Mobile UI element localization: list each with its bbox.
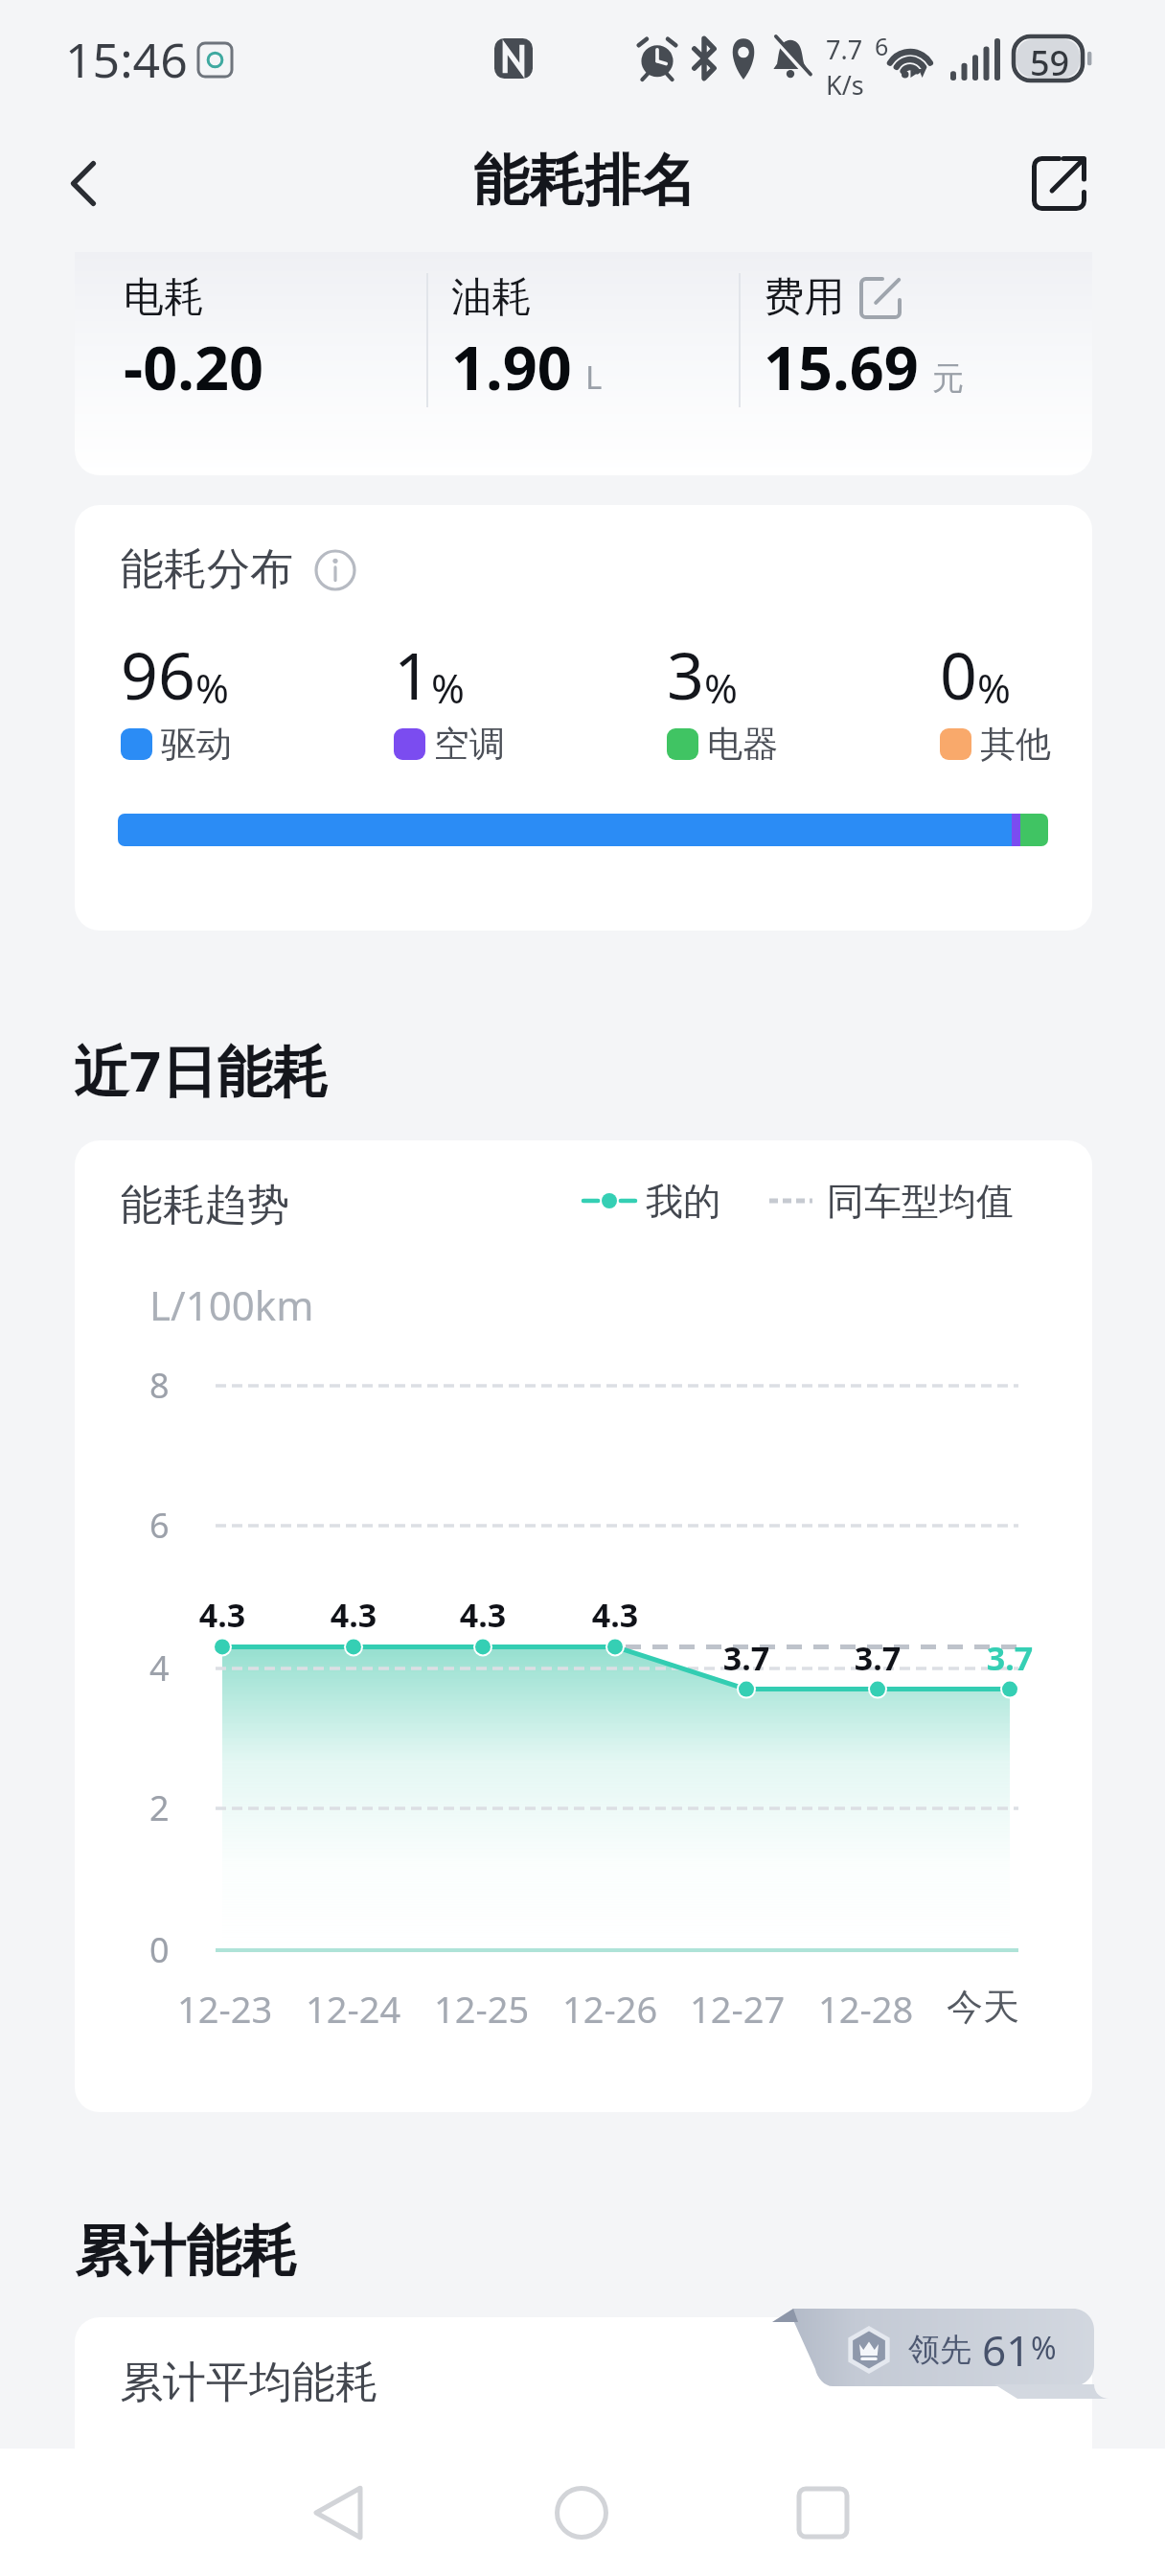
staticText: 空调 — [434, 722, 505, 767]
staticText: 4.3 — [538, 1593, 692, 1637]
staticText: 8 — [149, 1362, 170, 1409]
staticText: 3.7 — [933, 1636, 1086, 1680]
staticText: % — [1031, 2327, 1057, 2369]
staticText: -0.20 — [124, 326, 263, 408]
staticText: 能耗分布 — [121, 542, 293, 597]
staticText: 12-23 — [177, 1984, 273, 2034]
staticText: 12-28 — [818, 1984, 914, 2034]
staticText: 累计平均能耗 — [120, 2356, 378, 2410]
staticText: 近7日能耗 — [74, 1032, 329, 1108]
staticText: L — [585, 356, 603, 399]
staticText: 费用 — [764, 272, 844, 323]
staticText: % — [195, 660, 229, 715]
staticText: K/s — [826, 67, 864, 103]
staticText: 1 — [394, 630, 431, 719]
button[interactable]: 能耗趋势 — [75, 1140, 1092, 2112]
staticText: 4 — [149, 1644, 170, 1691]
button[interactable]: 能耗分布 — [75, 505, 1092, 931]
button[interactable] — [75, 2317, 1092, 2449]
staticText: 电器 — [707, 722, 778, 767]
staticText: 其他 — [980, 722, 1051, 767]
staticText: 59 — [1030, 39, 1070, 86]
staticText: 12-24 — [306, 1984, 401, 2034]
staticText: 同车型均值 — [827, 1178, 1014, 1225]
staticText: 7.7 — [826, 32, 863, 67]
staticText: 3.7 — [670, 1636, 823, 1680]
staticText: 12-25 — [434, 1984, 530, 2034]
staticText: 4.3 — [277, 1593, 430, 1637]
staticText: 我的 — [646, 1178, 720, 1225]
staticText: 能耗趋势 — [121, 1179, 289, 1231]
button[interactable]: Recents — [775, 2465, 871, 2561]
staticText: 3.7 — [801, 1636, 954, 1680]
button[interactable]: Back — [42, 142, 125, 224]
staticText: 电耗 — [124, 272, 204, 323]
button[interactable]: Back — [290, 2465, 386, 2561]
staticText: 12-26 — [562, 1984, 658, 2034]
staticText: 0 — [940, 630, 977, 719]
button[interactable]: 电耗 — [75, 252, 1092, 475]
button[interactable]: Share — [1017, 142, 1100, 224]
staticText: 2 — [149, 1784, 170, 1831]
staticText: 驱动 — [161, 722, 232, 767]
staticText: 1.90 — [451, 326, 572, 408]
staticText: 今天 — [947, 1984, 1019, 2030]
staticText: 累计能耗 — [75, 2217, 297, 2287]
staticText: 4.3 — [146, 1593, 299, 1637]
staticText: 96 — [121, 630, 195, 719]
staticText: % — [704, 660, 738, 715]
button[interactable]: Home — [534, 2465, 629, 2561]
staticText: 6 — [875, 30, 889, 62]
staticText: 油耗 — [451, 272, 532, 323]
staticText: 15.69 — [764, 326, 919, 408]
staticText: 能耗排名 — [473, 146, 696, 216]
staticText: % — [977, 660, 1011, 715]
staticText: 4.3 — [406, 1593, 560, 1637]
staticText: L/100km — [149, 1277, 314, 1332]
staticText: 15:46 — [65, 27, 188, 92]
staticText: 3 — [667, 630, 704, 719]
staticText: % — [431, 660, 465, 715]
staticText: 12-27 — [690, 1984, 786, 2034]
staticText: 领先 — [908, 2330, 971, 2370]
staticText: 元 — [932, 358, 964, 399]
staticText: 61 — [982, 2321, 1031, 2379]
staticText: 0 — [149, 1926, 170, 1973]
staticText: 6 — [149, 1502, 170, 1549]
